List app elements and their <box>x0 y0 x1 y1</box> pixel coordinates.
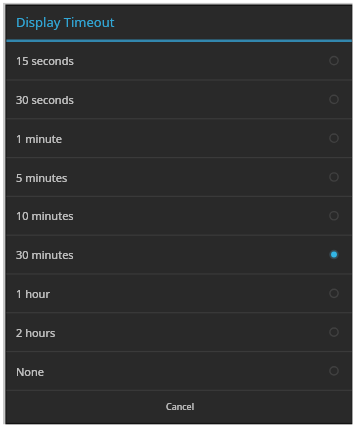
staticText: 5 minutes <box>16 170 68 185</box>
staticText: None <box>16 364 45 379</box>
button[interactable]: 30 seconds <box>6 80 351 119</box>
staticText: 5 minutes <box>16 170 68 185</box>
staticText: Cancel <box>166 400 195 412</box>
staticText: Display Timeout <box>16 13 115 31</box>
button[interactable]: 10 minutes <box>6 196 351 235</box>
button[interactable]: 5 minutes <box>6 158 351 197</box>
staticText: Cancel <box>166 400 195 412</box>
button[interactable]: 15 seconds <box>6 41 351 80</box>
button[interactable]: None <box>6 352 351 391</box>
staticText: 1 hour <box>16 286 50 301</box>
button[interactable]: 30 minutes, selected <box>6 235 351 274</box>
staticText: 1 minute <box>16 131 63 146</box>
staticText: 15 seconds <box>16 53 74 68</box>
staticText: 1 hour <box>16 286 50 301</box>
staticText: 1 minute <box>16 131 63 146</box>
staticText: 2 hours <box>16 325 56 340</box>
staticText: 2 hours <box>16 325 56 340</box>
staticText: None <box>16 364 45 379</box>
staticText: 10 minutes <box>16 208 74 223</box>
staticText: 30 seconds <box>16 92 74 107</box>
button[interactable]: 1 minute <box>6 119 351 158</box>
staticText: 10 minutes <box>16 208 74 223</box>
staticText: 30 seconds <box>16 92 74 107</box>
button[interactable]: Cancel <box>6 390 351 423</box>
staticText: Display Timeout <box>16 13 115 31</box>
button[interactable]: 2 hours <box>6 313 351 352</box>
staticText: 30 minutes <box>16 247 74 262</box>
button[interactable]: 1 hour <box>6 274 351 313</box>
staticText: 15 seconds <box>16 53 74 68</box>
staticText: 30 minutes <box>16 247 74 262</box>
